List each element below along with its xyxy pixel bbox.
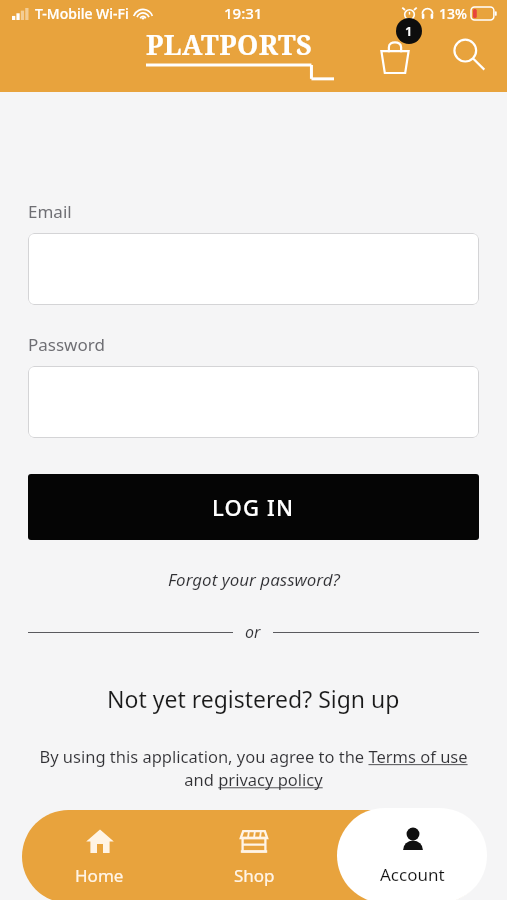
- button[interactable]: Not yet registered? Sign up: [28, 683, 479, 714]
- button[interactable]: Shop: [177, 810, 331, 900]
- staticText: 13%: [439, 4, 467, 23]
- button[interactable]: Cart, 1 item: [376, 30, 424, 78]
- staticText: 1: [405, 22, 413, 40]
- button[interactable]: Home: [22, 810, 177, 900]
- staticText: Home: [75, 864, 124, 887]
- button[interactable]: [28, 233, 479, 305]
- staticText: Account: [380, 863, 445, 886]
- button[interactable]: By using this application, you agree to …: [28, 745, 479, 791]
- staticText: Forgot your password?: [168, 568, 340, 591]
- staticText: PLATPORTS: [146, 26, 313, 63]
- button[interactable]: Forgot your password?: [28, 568, 479, 591]
- staticText: 19:31: [224, 3, 263, 23]
- button[interactable]: [28, 366, 479, 438]
- button[interactable]: Search: [446, 32, 490, 76]
- button[interactable]: LOG IN: [28, 474, 479, 540]
- staticText: Password: [28, 333, 105, 356]
- staticText: Shop: [234, 864, 275, 887]
- staticText: or: [245, 621, 261, 643]
- button[interactable]: Account: [337, 808, 487, 900]
- staticText: T-Mobile Wi-Fi: [35, 4, 129, 23]
- staticText: Email: [28, 200, 72, 223]
- staticText: Not yet registered? Sign up: [107, 683, 400, 714]
- staticText: LOG IN: [212, 492, 295, 522]
